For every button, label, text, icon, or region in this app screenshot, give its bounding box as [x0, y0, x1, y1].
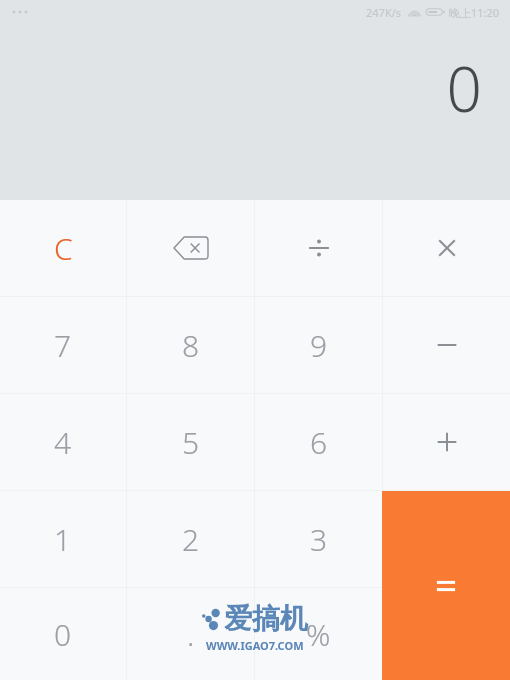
staticText: 2: [182, 519, 200, 560]
staticText: 爱搞机: [224, 601, 308, 636]
staticText: 4: [54, 422, 72, 463]
staticText: 7: [54, 325, 72, 366]
button[interactable]: 2: [127, 491, 254, 587]
button[interactable]: 9: [255, 297, 382, 393]
button[interactable]: .: [127, 588, 254, 680]
button[interactable]: 6: [255, 394, 382, 490]
staticText: 9: [310, 325, 328, 366]
button[interactable]: 4: [0, 394, 126, 490]
staticText: %: [306, 614, 331, 655]
button[interactable]: Multiply: [383, 200, 510, 296]
staticText: 0: [54, 614, 72, 655]
button[interactable]: 1: [0, 491, 126, 587]
staticText: WWW.IGAO7.COM: [206, 638, 304, 653]
staticText: 6: [310, 422, 328, 463]
button[interactable]: C: [0, 200, 126, 296]
staticText: 0: [446, 46, 482, 130]
button[interactable]: Equals: [382, 491, 510, 680]
button[interactable]: Minus: [383, 297, 510, 393]
staticText: 5: [182, 422, 200, 463]
staticText: 3: [310, 519, 328, 560]
staticText: 1: [54, 519, 72, 560]
button[interactable]: Backspace: [127, 200, 254, 296]
button[interactable]: 3: [255, 491, 382, 587]
staticText: 247K/s: [366, 5, 402, 20]
staticText: C: [54, 228, 73, 269]
staticText: 晚上11:20: [449, 5, 500, 20]
button[interactable]: %: [255, 588, 382, 680]
button[interactable]: 7: [0, 297, 126, 393]
button[interactable]: 0: [0, 588, 126, 680]
staticText: 8: [182, 325, 200, 366]
button[interactable]: 5: [127, 394, 254, 490]
button[interactable]: Plus: [383, 394, 510, 490]
staticText: .: [187, 614, 195, 655]
button[interactable]: Divide: [255, 200, 382, 296]
button[interactable]: 8: [127, 297, 254, 393]
